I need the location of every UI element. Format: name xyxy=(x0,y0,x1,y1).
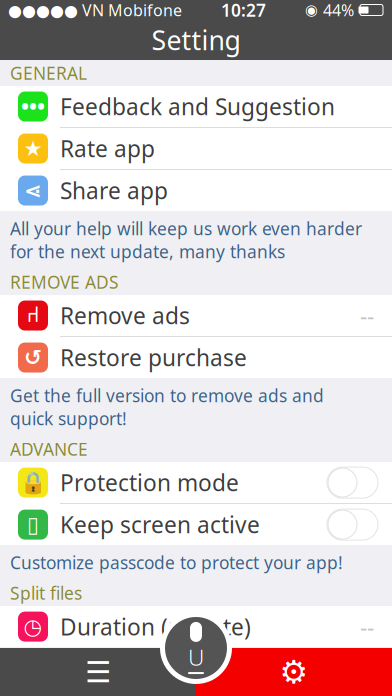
staticText: Split files xyxy=(10,582,82,605)
staticText: ⑁ xyxy=(26,305,39,326)
button[interactable]: ▯ xyxy=(0,504,392,545)
button[interactable]: ••• xyxy=(0,86,392,127)
staticText: ADVANCE xyxy=(10,438,88,461)
button[interactable]: ⑁ xyxy=(0,295,392,336)
staticText: ☰ xyxy=(85,655,111,689)
staticText: 10:27 xyxy=(221,0,266,21)
staticText: Customize passcode to protect your app! xyxy=(10,551,343,574)
staticText: Restore purchase xyxy=(60,342,247,373)
button[interactable]: ★ xyxy=(0,128,392,169)
staticText: U xyxy=(188,642,204,672)
staticText: ⋖ xyxy=(24,178,42,203)
staticText: ◉ xyxy=(305,2,318,18)
staticText: Customize to split files while recording xyxy=(10,653,322,676)
button[interactable]: Record xyxy=(160,612,232,684)
staticText: Duration (minute) xyxy=(60,611,251,642)
staticText: -- xyxy=(360,300,374,331)
button[interactable]: ⋖ xyxy=(0,170,392,211)
staticText: 🔒 xyxy=(19,470,46,495)
staticText: ▯ xyxy=(27,512,39,537)
staticText: -- xyxy=(360,611,374,642)
button[interactable]: Settings xyxy=(196,648,392,696)
staticText: Keep screen active xyxy=(60,509,260,540)
button[interactable]: ↺ xyxy=(0,337,392,378)
staticText: ★ xyxy=(23,136,42,161)
button[interactable]: 🔒 xyxy=(0,462,392,503)
staticText: GENERAL xyxy=(10,61,87,84)
staticText: ••• xyxy=(21,92,45,121)
button[interactable]: Recordings xyxy=(0,648,196,696)
button[interactable]: ◷ xyxy=(0,606,392,647)
staticText: 44% xyxy=(323,0,354,21)
staticText: Share app xyxy=(60,175,168,205)
staticText: ◷ xyxy=(23,614,42,639)
staticText: Setting xyxy=(151,22,240,58)
staticText: ↺ xyxy=(24,345,42,370)
staticText: ⚙ xyxy=(279,654,308,690)
staticText: All your help will keep us work even har… xyxy=(10,217,362,263)
staticText: ●●●●● VN Mobifone xyxy=(8,0,182,21)
staticText: Rate app xyxy=(60,133,155,163)
staticText: Get the full version to remove ads and q… xyxy=(10,384,324,430)
staticText: Protection mode xyxy=(60,467,239,498)
staticText: Feedback and Suggestion xyxy=(60,91,335,121)
staticText: Remove ads xyxy=(60,300,190,331)
staticText: REMOVE ADS xyxy=(10,270,119,293)
